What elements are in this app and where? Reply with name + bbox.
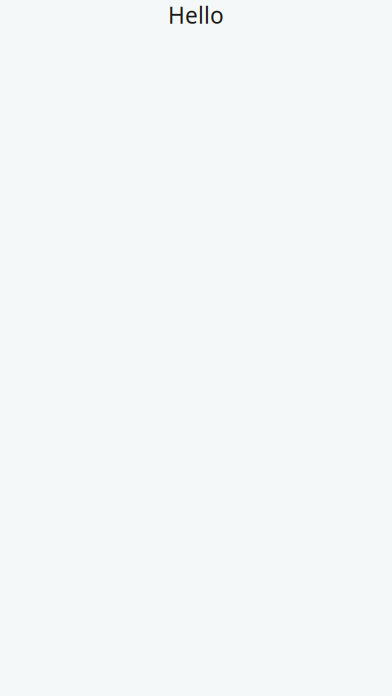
staticText: Hello xyxy=(168,0,224,30)
